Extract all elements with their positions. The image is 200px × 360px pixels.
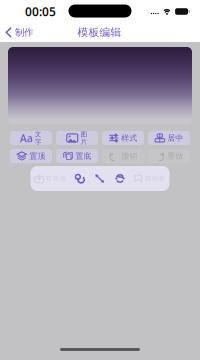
button[interactable]: 复制: [70, 166, 90, 191]
staticText: 文: [35, 130, 42, 138]
staticText: 居中: [167, 133, 183, 143]
button[interactable]: 旋转: [110, 166, 130, 191]
staticText: 置底: [75, 151, 91, 161]
staticText: 模板编辑: [77, 26, 121, 39]
button[interactable]: 居中: [148, 131, 190, 145]
staticText: 置顶: [29, 151, 45, 161]
button[interactable]: 图: [56, 131, 98, 145]
button[interactable]: Aa: [10, 131, 52, 145]
button[interactable]: 撤销: [102, 149, 144, 163]
button[interactable]: 重做: [148, 149, 190, 163]
button[interactable]: 制作: [0, 23, 39, 42]
button[interactable]: 存模板: [130, 166, 168, 191]
button[interactable]: 存草稿: [31, 166, 69, 191]
staticText: 重做: [167, 151, 183, 161]
button[interactable]: 置底: [56, 149, 98, 163]
staticText: 片: [80, 138, 87, 146]
staticText: 00:05: [25, 3, 56, 19]
button[interactable]: 样式: [102, 131, 144, 145]
staticText: 字: [35, 138, 42, 146]
staticText: 存模板: [145, 174, 166, 183]
staticText: Aa: [20, 131, 33, 145]
button[interactable]: 置顶: [10, 149, 52, 163]
button[interactable]: 缩放: [90, 166, 110, 191]
staticText: 样式: [121, 133, 137, 143]
staticText: 存草稿: [46, 174, 67, 183]
staticText: 撤销: [121, 151, 137, 161]
staticText: 制作: [15, 27, 33, 38]
staticText: 图: [80, 130, 87, 138]
